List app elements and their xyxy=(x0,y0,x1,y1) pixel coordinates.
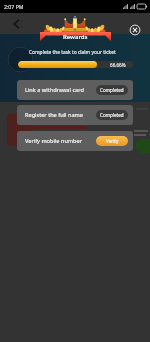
button[interactable]: Completed xyxy=(96,85,128,95)
staticText: Link a withdrawal card xyxy=(25,86,84,94)
staticText: 66.66% xyxy=(110,62,126,68)
button[interactable]: Verify xyxy=(96,136,128,146)
staticText: Rewards xyxy=(63,33,88,41)
staticText: 2:07 PM xyxy=(4,3,24,10)
button[interactable]: Register the full name xyxy=(17,105,133,125)
staticText: Register the full name xyxy=(25,111,83,119)
staticText: Verify mobile number xyxy=(25,137,82,145)
button[interactable]: Close xyxy=(129,24,141,36)
button[interactable]: Verify mobile number xyxy=(17,131,133,151)
staticText: Complete the task to claim your ticket xyxy=(29,49,116,56)
staticText: Verify xyxy=(106,138,119,144)
button[interactable]: Back xyxy=(6,14,26,34)
button[interactable]: Completed xyxy=(96,110,128,120)
staticText: Completed xyxy=(100,112,124,118)
staticText: Completed xyxy=(100,87,124,93)
button[interactable]: Link a withdrawal card xyxy=(17,80,133,100)
